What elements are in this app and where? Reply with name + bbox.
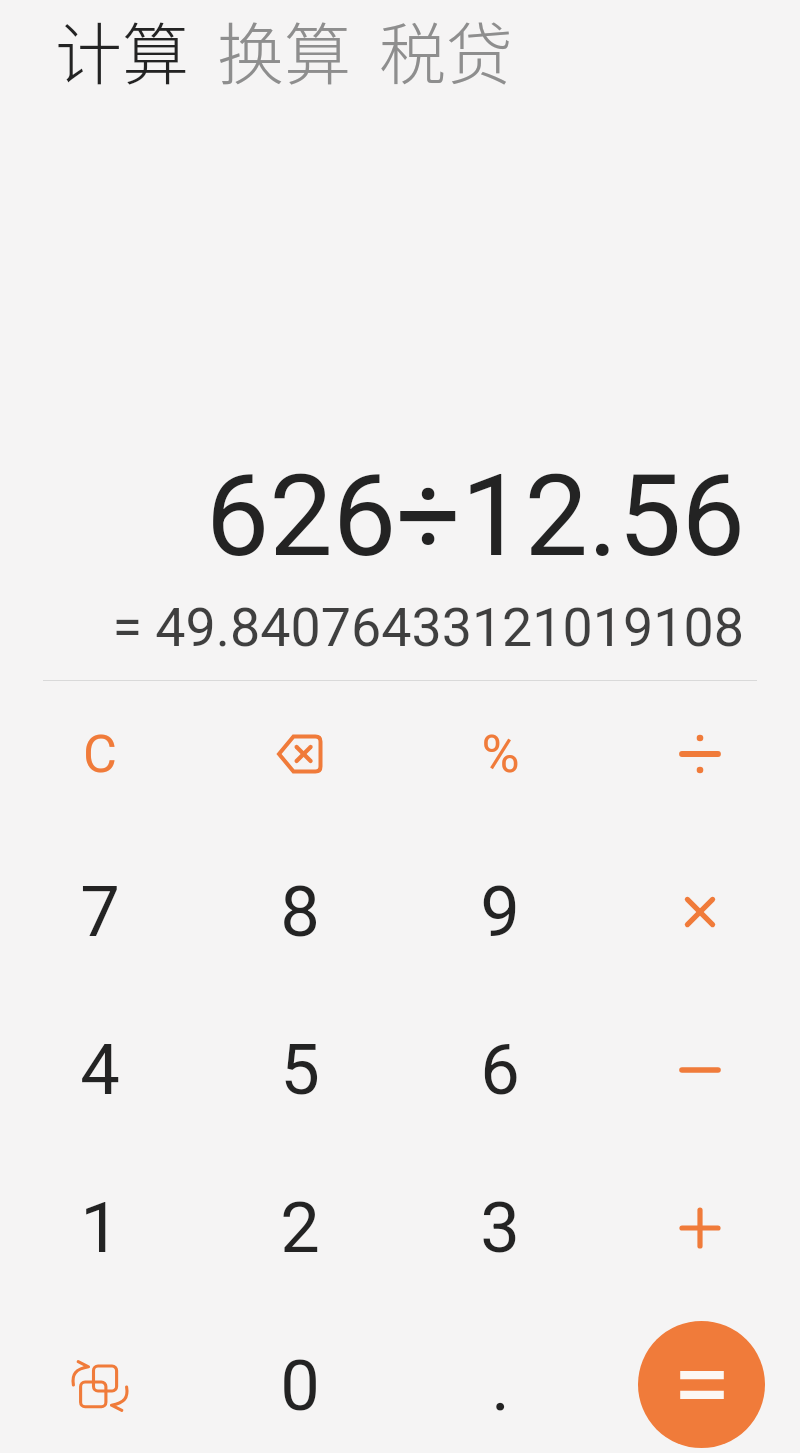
staticText: 626÷12.56	[205, 450, 745, 583]
staticText: 计算	[55, 1, 189, 98]
staticText: %	[481, 724, 520, 785]
button[interactable]: C	[0, 675, 200, 833]
button[interactable]: .	[400, 1307, 600, 1453]
staticText: C	[83, 724, 117, 785]
staticText: 换算	[217, 1, 351, 98]
button[interactable]: 5	[200, 991, 400, 1149]
button[interactable]: Backspace	[200, 675, 400, 833]
button[interactable]: Divide	[600, 675, 800, 833]
button[interactable]: 8	[200, 833, 400, 991]
button[interactable]: Equals	[638, 1321, 765, 1448]
staticText: 4	[80, 1029, 120, 1112]
staticText: .	[491, 1345, 510, 1428]
button[interactable]: 换算	[217, 1, 351, 98]
button[interactable]: 6	[400, 991, 600, 1149]
button[interactable]: 税贷	[379, 1, 513, 98]
button[interactable]: 9	[400, 833, 600, 991]
staticText: 5	[280, 1029, 320, 1112]
staticText: 8	[280, 871, 320, 954]
button[interactable]: Convert	[0, 1307, 200, 1453]
staticText: 3	[480, 1187, 520, 1270]
staticText: 9	[480, 871, 520, 954]
staticText: 6	[480, 1029, 520, 1112]
button[interactable]: 1	[0, 1149, 200, 1307]
button[interactable]: 4	[0, 991, 200, 1149]
button[interactable]: Multiply	[600, 833, 800, 991]
button[interactable]: Minus	[600, 991, 800, 1149]
button[interactable]: 2	[200, 1149, 400, 1307]
staticText: 1	[80, 1187, 120, 1270]
staticText: 7	[80, 871, 120, 954]
button[interactable]: 计算	[55, 1, 189, 98]
staticText: = 49.84076433121019108	[112, 596, 744, 659]
button[interactable]: 7	[0, 833, 200, 991]
button[interactable]: 3	[400, 1149, 600, 1307]
button[interactable]: 0	[200, 1307, 400, 1453]
staticText: 税贷	[379, 1, 513, 98]
button[interactable]: Plus	[600, 1149, 800, 1307]
staticText: 0	[280, 1345, 320, 1428]
button[interactable]: %	[400, 675, 600, 833]
staticText: 2	[280, 1187, 320, 1270]
